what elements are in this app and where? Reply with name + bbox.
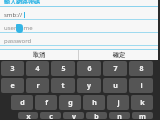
button[interactable]: 取消 [0, 50, 78, 60]
button[interactable]: 7 [103, 61, 127, 76]
button[interactable]: 8 [129, 61, 153, 76]
button[interactable]: 5 [51, 61, 75, 76]
staticText: u [113, 81, 118, 91]
button[interactable]: g [59, 95, 81, 110]
staticText: 6 [87, 64, 92, 74]
button[interactable]: smb:// [4, 10, 158, 19]
staticText: i [140, 81, 143, 91]
staticText: 確定 [113, 51, 125, 59]
staticText: 3 [10, 64, 15, 74]
button[interactable]: e [1, 78, 24, 93]
button[interactable]: r [26, 78, 49, 93]
button[interactable]: u [103, 78, 127, 93]
button[interactable]: b [86, 112, 107, 119]
staticText: v [72, 112, 76, 119]
staticText: 5 [61, 64, 66, 74]
button[interactable]: m [132, 112, 153, 119]
button[interactable]: password [4, 36, 158, 45]
button[interactable]: 3 [1, 61, 24, 76]
button[interactable]: 4 [26, 61, 49, 76]
staticText: h [92, 98, 97, 108]
button[interactable]: 確定 [79, 50, 158, 60]
staticText: f [45, 98, 48, 108]
button[interactable]: k [131, 95, 153, 110]
button[interactable]: username [4, 23, 158, 32]
staticText: n [117, 112, 122, 119]
staticText: 7 [113, 64, 118, 74]
button[interactable]: t [51, 78, 75, 93]
staticText: y [87, 81, 91, 91]
staticText: r [36, 81, 40, 91]
staticText: m [139, 112, 146, 119]
staticText: 輸入網路密碼 [4, 0, 40, 4]
staticText: username [4, 24, 33, 32]
button[interactable]: n [109, 112, 130, 119]
button[interactable]: d [11, 95, 33, 110]
staticText: 4 [35, 64, 40, 74]
staticText: e [10, 81, 15, 91]
staticText: smb:// [4, 11, 23, 19]
button[interactable]: 6 [77, 61, 101, 76]
staticText: 8 [139, 64, 144, 74]
staticText: x [26, 112, 31, 119]
staticText: k [140, 98, 145, 108]
staticText: c [49, 112, 53, 119]
staticText: 取消 [33, 51, 45, 59]
staticText: password [4, 37, 32, 45]
button[interactable]: f [35, 95, 57, 110]
button[interactable]: x [18, 112, 38, 119]
staticText: t [61, 81, 65, 91]
button[interactable]: i [129, 78, 153, 93]
button[interactable]: c [40, 112, 61, 119]
button[interactable]: v [63, 112, 84, 119]
staticText: g [68, 98, 73, 108]
staticText: d [20, 98, 25, 108]
button[interactable]: y [77, 78, 101, 93]
other: Text selection handle [16, 24, 23, 33]
button[interactable]: h [83, 95, 105, 110]
button[interactable]: j [107, 95, 129, 110]
staticText: b [94, 112, 99, 119]
staticText: j [117, 98, 120, 108]
